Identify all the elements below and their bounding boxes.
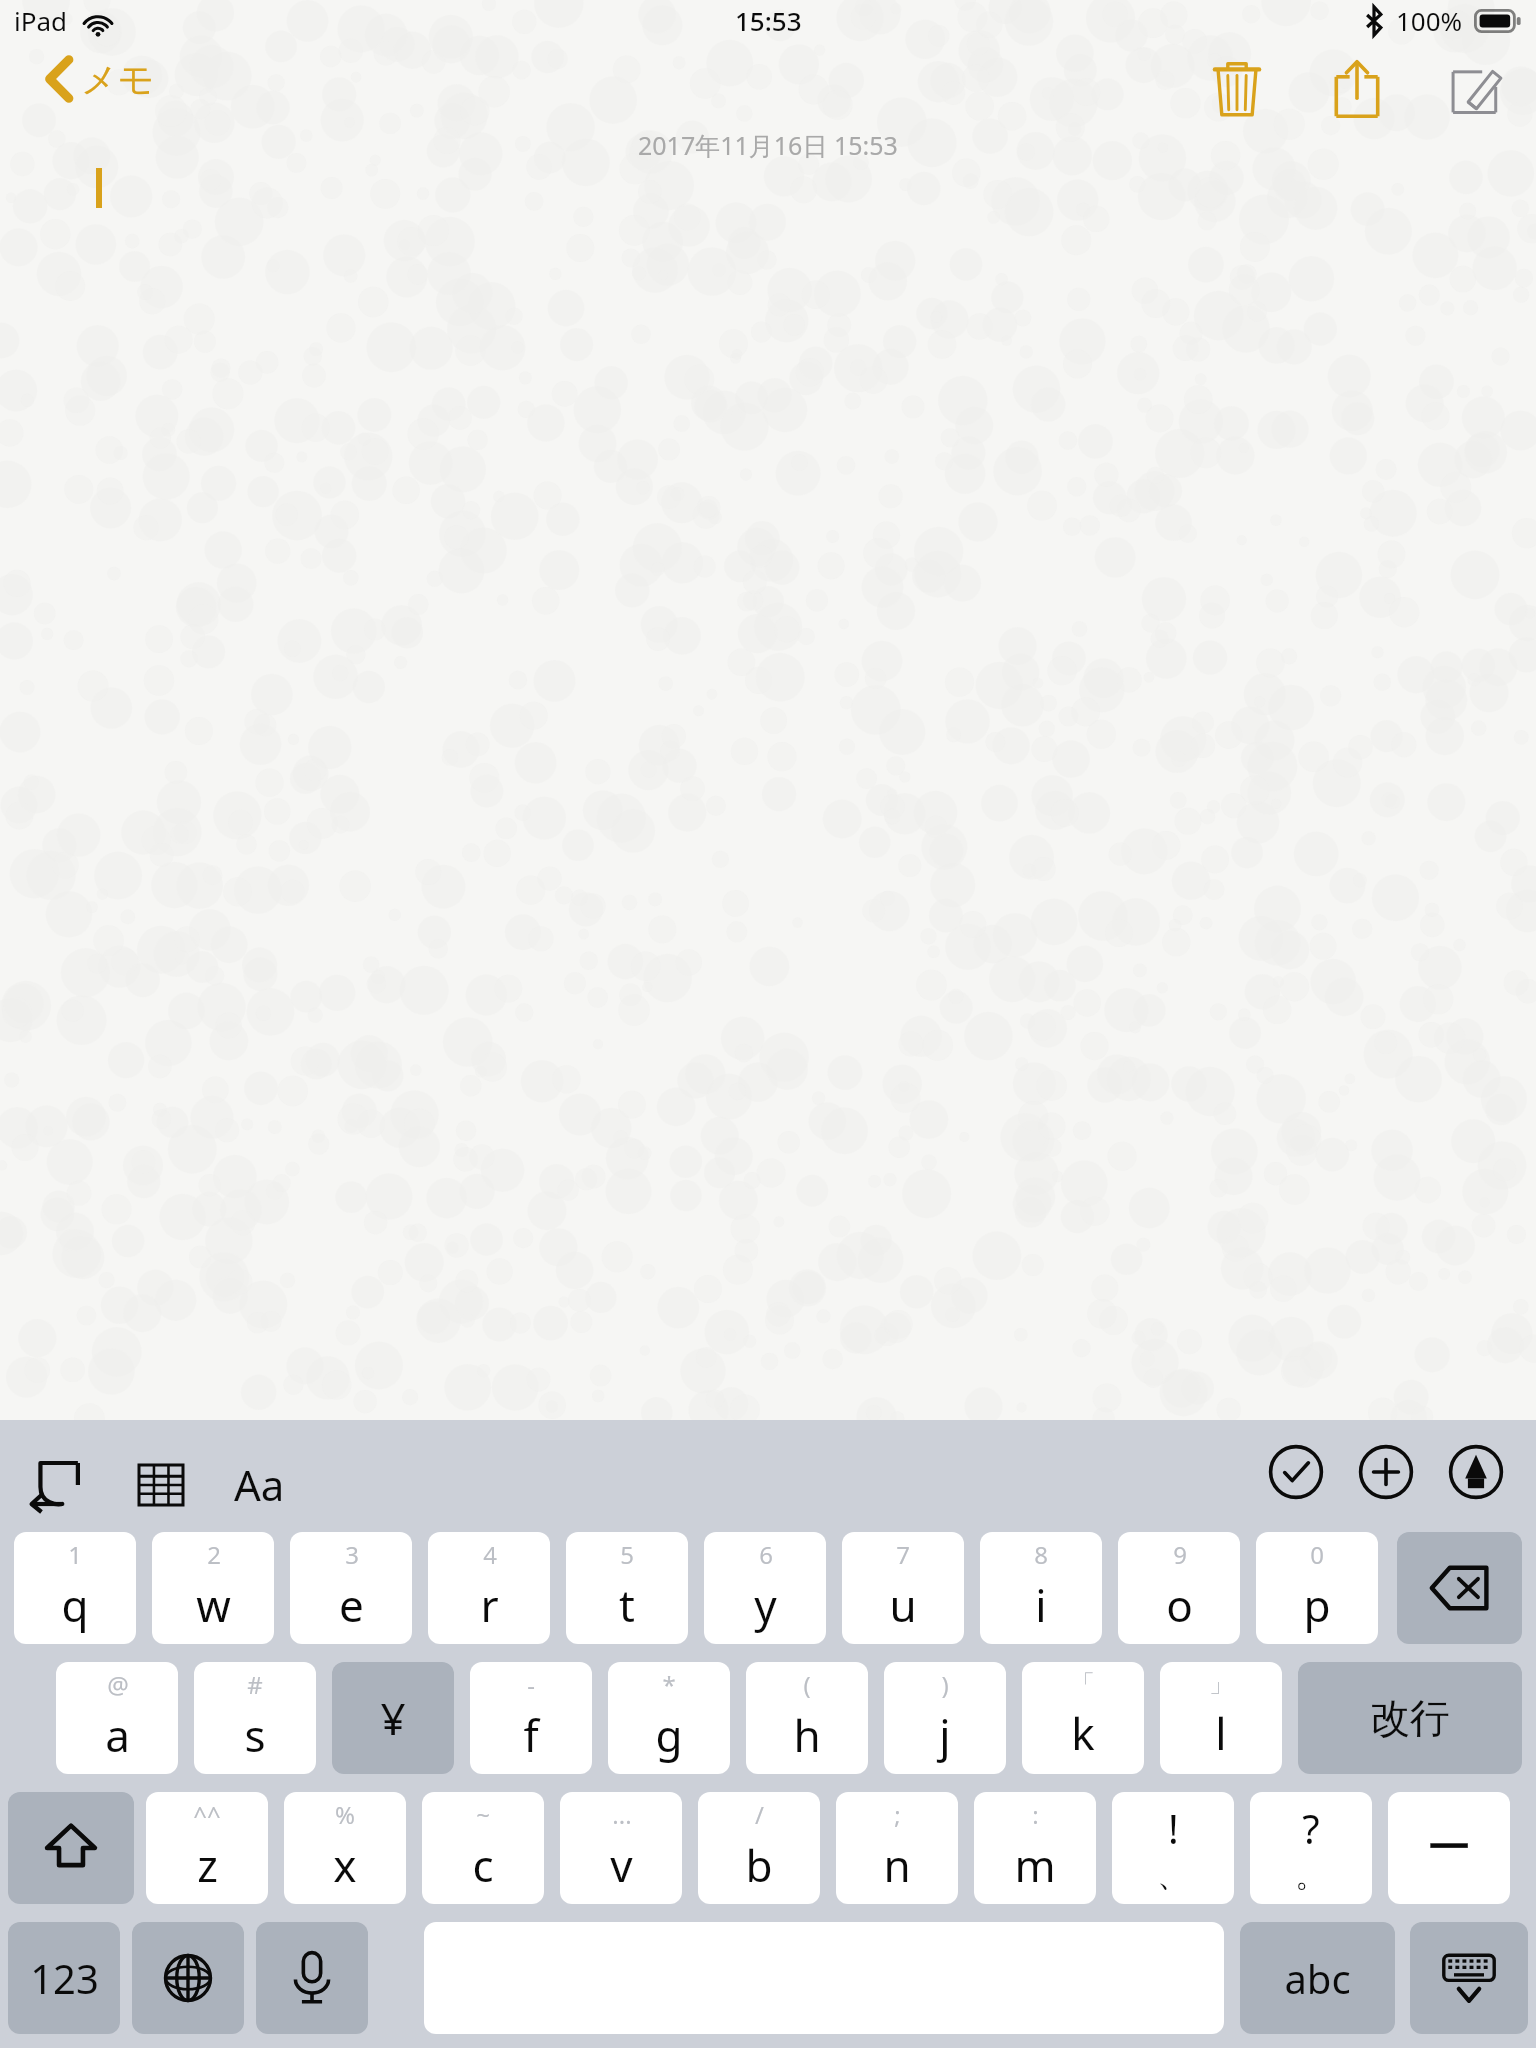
staticText: m (1014, 1835, 1056, 1895)
button[interactable]: 8 (980, 1532, 1102, 1644)
button[interactable]: メモ (38, 48, 163, 110)
staticText: c (472, 1835, 494, 1895)
button[interactable]: ) (884, 1662, 1006, 1774)
staticText: メモ (81, 57, 155, 102)
button[interactable]: * (608, 1662, 730, 1774)
button[interactable]: Insert table (128, 1452, 194, 1518)
staticText: e (339, 1575, 364, 1635)
staticText: 、 (1157, 1855, 1189, 1895)
staticText: i (1035, 1575, 1047, 1635)
button[interactable]: ー (1388, 1792, 1510, 1904)
staticText: 15:53 (735, 3, 802, 38)
button[interactable]: 5 (566, 1532, 688, 1644)
staticText: 改行 (1370, 1693, 1450, 1743)
button[interactable]: ~ (422, 1792, 544, 1904)
button[interactable]: : (974, 1792, 1096, 1904)
staticText: ! (1168, 1801, 1179, 1855)
button[interactable]: Backspace (1397, 1532, 1522, 1644)
button[interactable]: Markup (1440, 1436, 1512, 1508)
staticText: 6 (759, 1538, 773, 1571)
button[interactable]: 1 (14, 1532, 136, 1644)
button[interactable]: Delete note (1198, 50, 1276, 128)
button[interactable]: Aa (224, 1446, 295, 1523)
staticText: q (61, 1575, 89, 1635)
button[interactable]: Dictate (256, 1922, 368, 2034)
staticText: / (755, 1798, 764, 1831)
staticText: h (793, 1705, 821, 1765)
button[interactable]: ? (1250, 1792, 1372, 1904)
staticText: 9 (1173, 1538, 1187, 1571)
staticText: ; (894, 1798, 901, 1831)
button[interactable]: @ (56, 1662, 178, 1774)
button[interactable]: ... (560, 1792, 682, 1904)
button[interactable]: ¥ (332, 1662, 454, 1774)
button[interactable]: 「 (1022, 1662, 1144, 1774)
staticText: ¥ (380, 1688, 406, 1748)
staticText: o (1166, 1575, 1193, 1635)
staticText: - (527, 1668, 535, 1701)
staticText: b (745, 1835, 773, 1895)
staticText: 「 (1071, 1669, 1095, 1699)
button[interactable]: # (194, 1662, 316, 1774)
button[interactable]: 9 (1118, 1532, 1240, 1644)
staticText: 」 (1209, 1669, 1233, 1699)
button[interactable]: 」 (1160, 1662, 1282, 1774)
button[interactable]: Shift (8, 1792, 134, 1904)
button[interactable]: ! (1112, 1792, 1234, 1904)
button[interactable]: - (470, 1662, 592, 1774)
staticText: abc (1284, 1951, 1351, 2005)
button[interactable]: Add attachment (1350, 1436, 1422, 1508)
button[interactable]: 123 (8, 1922, 120, 2034)
button[interactable]: % (284, 1792, 406, 1904)
button[interactable]: Change keyboard (132, 1922, 244, 2034)
staticText: ... (612, 1798, 632, 1831)
staticText: l (1215, 1703, 1227, 1763)
staticText: % (335, 1798, 355, 1831)
staticText: 0 (1310, 1538, 1324, 1571)
button[interactable]: 改行 (1298, 1662, 1522, 1774)
button[interactable]: ( (746, 1662, 868, 1774)
staticText: iPad (14, 3, 68, 38)
staticText: ^^ (193, 1798, 221, 1831)
button[interactable]: 4 (428, 1532, 550, 1644)
button[interactable]: Hide keyboard (1410, 1922, 1528, 2034)
staticText: ) (941, 1668, 949, 1701)
staticText: t (619, 1575, 635, 1635)
staticText: k (1071, 1703, 1095, 1763)
staticText: 4 (483, 1538, 497, 1571)
staticText: s (244, 1705, 266, 1765)
button[interactable]: 6 (704, 1532, 826, 1644)
staticText: Aa (234, 1456, 285, 1513)
staticText: r (480, 1575, 499, 1635)
staticText: 1 (68, 1538, 82, 1571)
button[interactable]: 7 (842, 1532, 964, 1644)
staticText: u (889, 1575, 917, 1635)
button[interactable]: 2 (152, 1532, 274, 1644)
button[interactable]: Share (1318, 50, 1396, 128)
staticText: ー (1426, 1819, 1472, 1877)
staticText: 3 (345, 1538, 359, 1571)
staticText: 。 (1295, 1855, 1327, 1895)
staticText: 2 (207, 1538, 221, 1571)
button[interactable]: abc (1240, 1922, 1395, 2034)
button[interactable]: 0 (1256, 1532, 1378, 1644)
staticText: 2017年11月16日 15:53 (638, 128, 898, 162)
staticText: # (247, 1668, 263, 1701)
staticText: @ (107, 1668, 129, 1701)
staticText: * (662, 1668, 676, 1701)
staticText: 5 (620, 1538, 634, 1571)
button[interactable]: 3 (290, 1532, 412, 1644)
button[interactable]: Undo (22, 1452, 88, 1518)
staticText: x (333, 1835, 357, 1895)
staticText: ( (803, 1668, 811, 1701)
button[interactable]: ; (836, 1792, 958, 1904)
button[interactable]: / (698, 1792, 820, 1904)
button[interactable]: Checklist (1260, 1436, 1332, 1508)
staticText: n (883, 1835, 911, 1895)
staticText: 8 (1034, 1538, 1048, 1571)
button[interactable]: ^^ (146, 1792, 268, 1904)
button[interactable]: New note (1438, 50, 1516, 128)
staticText: 100% (1396, 3, 1463, 38)
staticText: w (196, 1575, 231, 1635)
